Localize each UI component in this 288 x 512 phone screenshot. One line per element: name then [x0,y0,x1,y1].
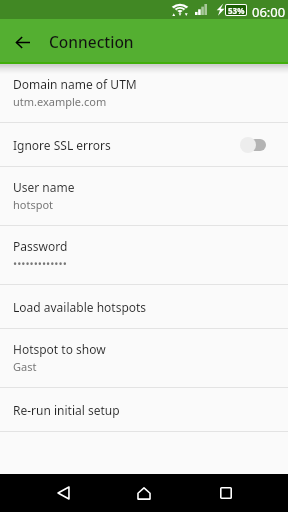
button[interactable]: Back [44,474,82,512]
button[interactable]: Load available hotspots [0,285,288,328]
staticText: Password [13,238,68,254]
staticText: ••••••••••••• [13,256,67,271]
button[interactable]: Recent apps [207,474,245,512]
staticText: hotspot [13,197,54,212]
staticText: 06:00 [252,3,286,21]
staticText: utm.example.com [13,94,107,109]
button[interactable]: Navigate up [9,28,37,56]
staticText: Ignore SSL errors [13,137,111,153]
button[interactable]: Domain name of UTM [0,64,288,122]
button[interactable]: Hotspot to show [0,329,288,387]
button[interactable]: Ignore SSL errors [0,123,288,166]
button[interactable]: Password [0,226,288,284]
button[interactable]: Re-run initial setup [0,388,288,431]
button[interactable]: User name [0,167,288,225]
staticText: Gast [13,359,37,374]
staticText: Domain name of UTM [13,76,137,92]
staticText: Connection [49,31,134,52]
staticText: 53% [228,5,245,15]
staticText: Load available hotspots [13,299,147,315]
staticText: Hotspot to show [13,341,106,357]
staticText: Re-run initial setup [13,402,120,418]
button[interactable]: Home [125,474,163,512]
staticText: User name [13,179,75,195]
